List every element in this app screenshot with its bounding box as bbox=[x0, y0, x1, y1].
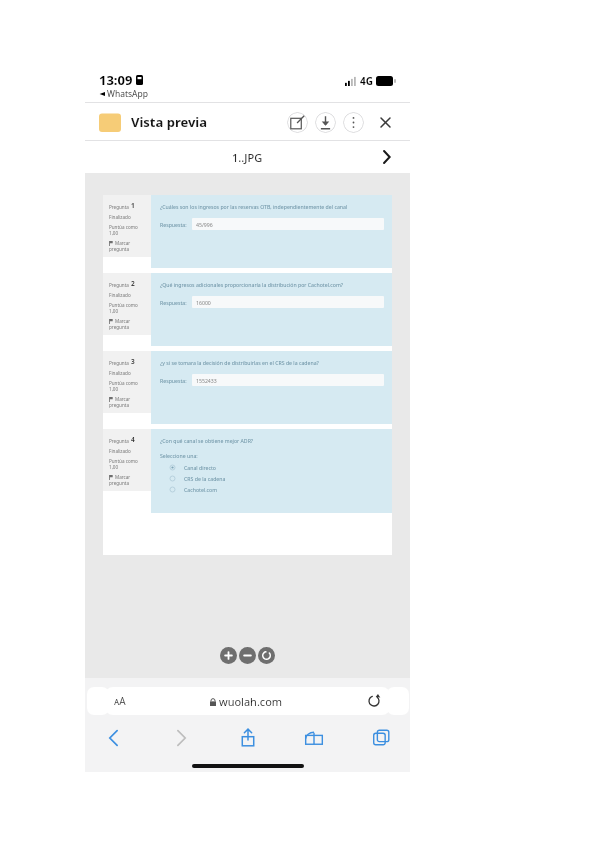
staticText: pregunta bbox=[109, 402, 129, 408]
staticText: WhatsApp bbox=[107, 88, 148, 100]
staticText: Marcar bbox=[115, 474, 131, 480]
other: Reload bbox=[367, 694, 381, 708]
button[interactable]: CRS de la cadena bbox=[160, 473, 384, 484]
button[interactable]: Back bbox=[101, 725, 127, 751]
staticText: ᴀA bbox=[114, 694, 126, 708]
staticText: 1,00 bbox=[109, 386, 119, 392]
button[interactable]: Forward bbox=[168, 725, 194, 751]
staticText: Marcar bbox=[115, 240, 131, 246]
staticText: Pregunta bbox=[109, 360, 131, 366]
button[interactable]: Cachotel.com bbox=[160, 484, 384, 495]
staticText: 45/996 bbox=[196, 221, 213, 228]
button[interactable]: Zoom out bbox=[239, 647, 256, 664]
staticText: Cachotel.com bbox=[184, 486, 218, 493]
staticText: Marcar bbox=[115, 396, 131, 402]
button[interactable]: Bookmarks bbox=[301, 725, 327, 751]
button[interactable]: 1..JPG bbox=[85, 141, 410, 173]
staticText: Canal directo bbox=[184, 464, 216, 471]
staticText: 1,00 bbox=[109, 230, 119, 236]
staticText: Puntúa como bbox=[109, 380, 138, 386]
staticText: wuolah.com bbox=[219, 694, 283, 709]
button[interactable]: ᴀA bbox=[105, 687, 390, 715]
staticText: Pregunta bbox=[109, 282, 131, 288]
button[interactable]: Open in new bbox=[287, 112, 308, 133]
staticText: 1,00 bbox=[109, 464, 119, 470]
staticText: 4 bbox=[131, 435, 135, 444]
staticText: Pregunta bbox=[109, 438, 131, 444]
staticText: Seleccione una: bbox=[160, 452, 198, 459]
staticText: pregunta bbox=[109, 480, 129, 486]
button[interactable]: Share bbox=[235, 725, 261, 751]
staticText: Vista previa bbox=[131, 113, 208, 131]
staticText: 1..JPG bbox=[232, 150, 263, 165]
button[interactable]: Reset zoom bbox=[258, 647, 275, 664]
staticText: Respuesta: bbox=[160, 299, 187, 306]
staticText: Finalizado bbox=[109, 292, 131, 298]
staticText: Respuesta: bbox=[160, 377, 187, 384]
staticText: pregunta bbox=[109, 324, 129, 330]
staticText: CRS de la cadena bbox=[184, 475, 226, 482]
staticText: Puntúa como bbox=[109, 224, 138, 230]
staticText: 2 bbox=[131, 279, 135, 288]
staticText: 3 bbox=[131, 357, 135, 366]
staticText: ¿Qué ingresos adicionales proporcionaría… bbox=[160, 281, 344, 288]
staticText: Marcar bbox=[115, 318, 131, 324]
staticText: ¿y si se tomara la decisión de distribui… bbox=[160, 359, 319, 366]
staticText: 1,00 bbox=[109, 308, 119, 314]
button[interactable]: Close bbox=[374, 111, 396, 133]
staticText: Finalizado bbox=[109, 370, 131, 376]
other: Next bbox=[378, 149, 394, 165]
staticText: 1 bbox=[131, 201, 135, 210]
staticText: Pregunta bbox=[109, 204, 131, 210]
staticText: Respuesta: bbox=[160, 221, 187, 228]
staticText: 16000 bbox=[196, 299, 211, 306]
staticText: Puntúa como bbox=[109, 302, 138, 308]
button[interactable]: Canal directo bbox=[160, 462, 384, 473]
button[interactable]: More options bbox=[343, 112, 364, 133]
staticText: Finalizado bbox=[109, 448, 131, 454]
staticText: pregunta bbox=[109, 246, 129, 252]
button[interactable]: Download bbox=[315, 112, 336, 133]
button[interactable]: Zoom in bbox=[220, 647, 237, 664]
staticText: 13:09 bbox=[99, 71, 133, 89]
staticText: ¿Con qué canal se obtiene mejor ADR? bbox=[160, 437, 254, 444]
staticText: 4G bbox=[360, 74, 373, 88]
staticText: ¿Cuáles son los ingresos por las reserva… bbox=[160, 203, 348, 210]
staticText: Finalizado bbox=[109, 214, 131, 220]
button[interactable]: Tabs bbox=[368, 725, 394, 751]
staticText: Puntúa como bbox=[109, 458, 138, 464]
staticText: 1552433 bbox=[196, 377, 217, 384]
